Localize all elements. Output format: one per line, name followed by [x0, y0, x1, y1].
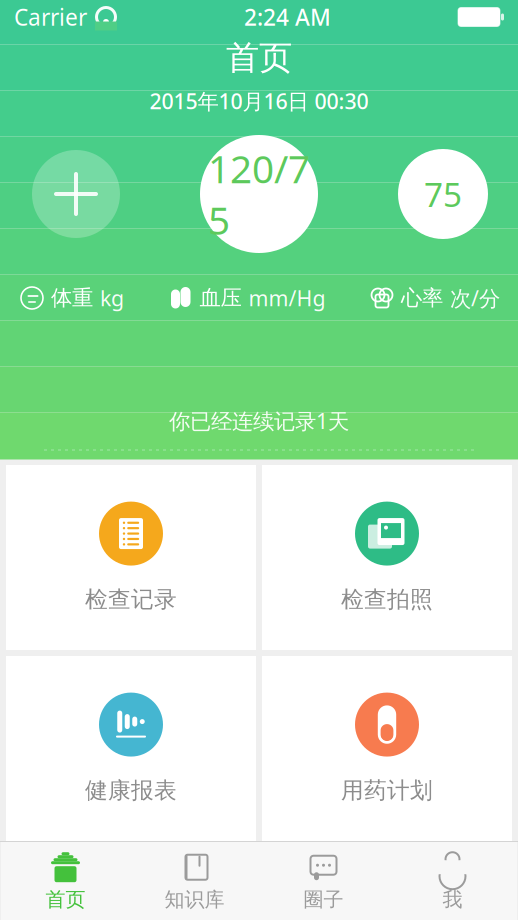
button[interactable]: 我	[388, 842, 517, 920]
button[interactable]: 用药计划	[262, 656, 512, 841]
staticText: 体重	[51, 285, 93, 311]
staticText: 检查拍照	[341, 586, 433, 613]
staticText: 次/分	[450, 284, 500, 312]
staticText: Carrier	[14, 2, 87, 32]
staticText: 我	[442, 887, 462, 912]
button[interactable]: 检查拍照	[262, 465, 512, 650]
staticText: 检查记录	[85, 586, 177, 613]
button[interactable]: 圈子	[259, 842, 388, 920]
button[interactable]: 检查记录	[6, 465, 256, 650]
staticText: 首页	[226, 37, 292, 78]
button[interactable]: 知识库	[130, 842, 259, 920]
staticText: 2:24 AM	[244, 2, 331, 32]
staticText: 知识库	[164, 887, 224, 912]
staticText: 用药计划	[341, 777, 433, 804]
button[interactable]: 首页	[1, 842, 130, 920]
staticText: 首页	[45, 887, 85, 912]
staticText: 血压	[199, 285, 241, 311]
button[interactable]: 添加记录	[32, 150, 120, 238]
button[interactable]: 120/75	[200, 135, 318, 253]
staticText: 120/75	[208, 143, 310, 245]
staticText: 你已经连续记录1天	[169, 407, 349, 435]
staticText: mm/Hg	[248, 284, 325, 312]
staticText: 圈子	[303, 887, 343, 912]
staticText: 75	[424, 172, 462, 216]
staticText: kg	[100, 284, 124, 312]
button[interactable]: 75	[398, 149, 488, 239]
button[interactable]: 健康报表	[6, 656, 256, 841]
staticText: 2015年10月16日 00:30	[149, 87, 368, 115]
staticText: 心率	[401, 285, 443, 311]
staticText: 健康报表	[85, 777, 177, 804]
